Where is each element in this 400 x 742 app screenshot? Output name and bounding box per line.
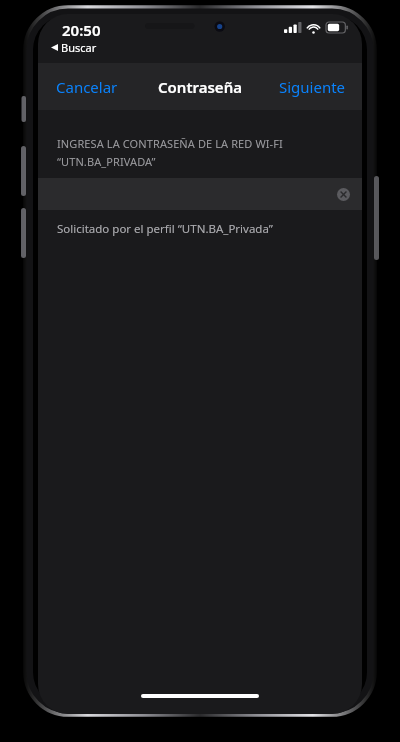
staticText: Contraseña	[158, 77, 242, 97]
button[interactable]: Buscar	[48, 39, 100, 56]
staticText: Siguiente	[279, 77, 346, 97]
button[interactable]: Siguiente	[263, 67, 362, 107]
button[interactable]: Borrar texto	[38, 178, 362, 210]
staticText: “UTN.BA_PRIVADA”	[57, 154, 156, 169]
staticText: Solicitado por el perfil “UTN.BA_Privada…	[57, 221, 346, 237]
button[interactable]: Borrar texto	[330, 181, 356, 207]
button[interactable]: Cancelar	[38, 67, 136, 107]
staticText: Buscar	[61, 40, 97, 55]
staticText: 20:50	[62, 20, 101, 40]
staticText: Cancelar	[56, 77, 118, 97]
staticText: INGRESA LA CONTRASEÑA DE LA RED WI-FI	[57, 136, 283, 151]
